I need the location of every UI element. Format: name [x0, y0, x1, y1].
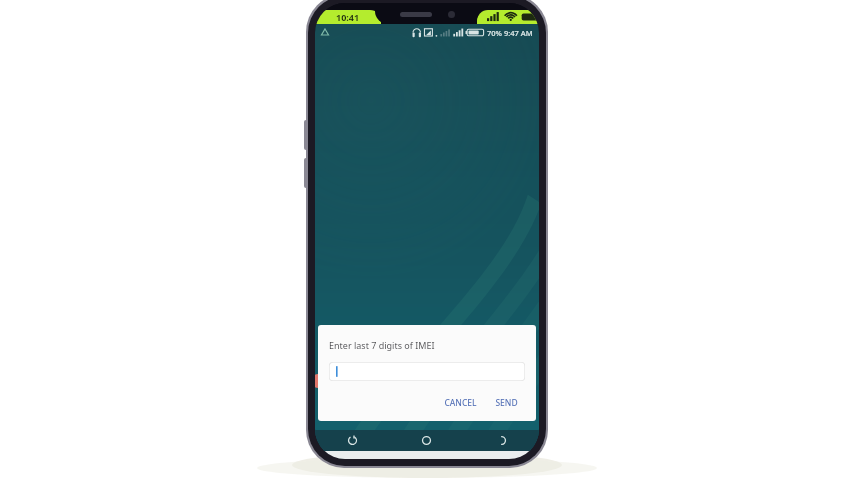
button[interactable]: Home: [389, 430, 464, 451]
button[interactable]: [329, 362, 525, 381]
staticText: Enter last 7 digits of IMEI: [329, 339, 435, 351]
staticText: CANCEL: [444, 397, 477, 409]
button[interactable]: Recent apps: [315, 430, 389, 451]
staticText: 70% 9:47 AM: [487, 28, 533, 38]
staticText: SEND: [495, 397, 518, 409]
button[interactable]: SEND: [490, 394, 523, 412]
button[interactable]: CANCEL: [439, 394, 482, 412]
staticText: 10:41: [336, 11, 360, 23]
button[interactable]: Back: [464, 430, 539, 451]
